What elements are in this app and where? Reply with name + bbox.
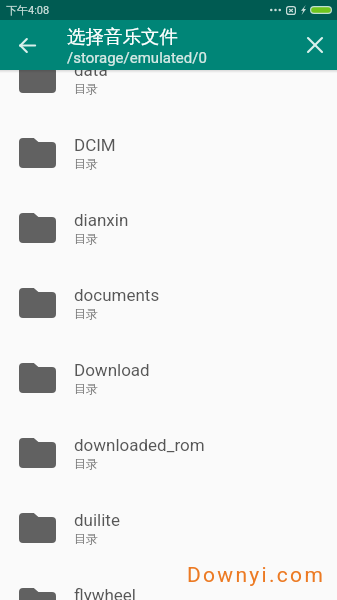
- staticText: downloaded_rom: [74, 435, 205, 455]
- button[interactable]: dianxin: [0, 190, 337, 265]
- staticText: /storage/emulated/0: [67, 49, 207, 67]
- staticText: data: [74, 60, 108, 80]
- staticText: documents: [74, 285, 160, 305]
- staticText: 目录: [74, 456, 98, 471]
- staticText: DCIM: [74, 135, 116, 155]
- staticText: flywheel: [74, 585, 136, 600]
- staticText: 目录: [74, 306, 98, 321]
- staticText: 下午4:08: [6, 3, 50, 17]
- staticText: Download: [74, 360, 150, 380]
- button[interactable]: duilite: [0, 490, 337, 565]
- button[interactable]: Back: [0, 20, 54, 70]
- staticText: 目录: [74, 156, 98, 171]
- staticText: 目录: [74, 381, 98, 396]
- staticText: 选择音乐文件: [67, 25, 178, 48]
- button[interactable]: data: [0, 40, 337, 115]
- button[interactable]: flywheel: [0, 565, 337, 600]
- staticText: 目录: [74, 531, 98, 546]
- staticText: Downyi.com: [187, 563, 326, 588]
- button[interactable]: documents: [0, 265, 337, 340]
- button[interactable]: downloaded_rom: [0, 415, 337, 490]
- button[interactable]: Download: [0, 340, 337, 415]
- button[interactable]: DCIM: [0, 115, 337, 190]
- staticText: duilite: [74, 510, 120, 530]
- staticText: 目录: [74, 231, 98, 246]
- staticText: 目录: [74, 81, 98, 96]
- staticText: dianxin: [74, 210, 129, 230]
- button[interactable]: Close: [293, 20, 337, 70]
